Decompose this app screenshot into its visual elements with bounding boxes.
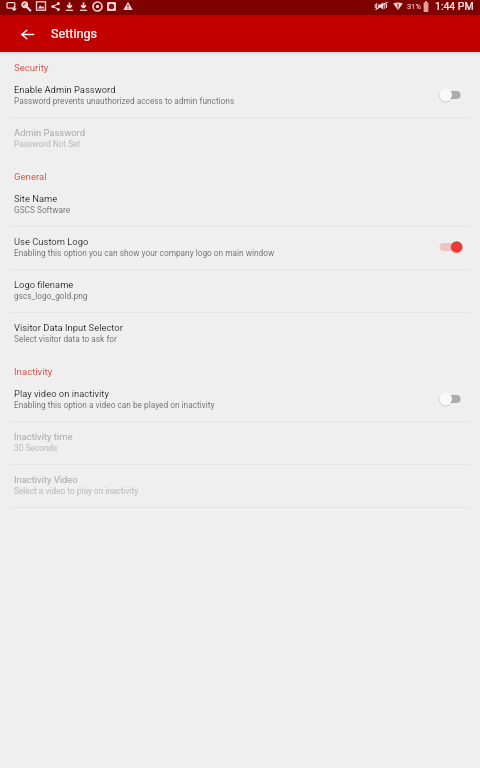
staticText: Visitor Data Input Selector [14,322,123,333]
staticText: Select visitor data to ask for [14,334,117,344]
button[interactable]: Logo filename [0,270,480,312]
staticText: gscs_logo_gold.png [14,291,88,301]
button[interactable]: Play video on inactivity [0,379,480,421]
staticText: Enabling this option you can show your c… [14,248,275,258]
staticText: Admin Password [14,127,85,138]
button[interactable]: Back [11,18,43,50]
staticText: Inactivity Video [14,474,78,485]
staticText: Password Not Set [14,139,81,149]
staticText: Settings [51,26,97,41]
button[interactable]: Admin Password [0,118,480,160]
button[interactable]: Use Custom Logo [0,227,480,269]
staticText: Logo filename [14,279,74,290]
button[interactable]: Site Name [0,184,480,226]
staticText: 1:44 PM [435,0,474,12]
staticText: Password prevents unauthorized access to… [14,96,235,106]
staticText: Inactivity time [14,431,73,442]
button[interactable]: Inactivity Video [0,465,480,507]
button[interactable]: Inactivity time [0,422,480,464]
staticText: Inactivity [14,366,53,377]
staticText: Enabling this option a video can be play… [14,400,215,410]
staticText: Security [14,62,49,73]
staticText: Enable Admin Password [14,84,116,95]
staticText: General [14,171,47,182]
staticText: Select a video to play on inactivity [14,486,139,496]
staticText: Use Custom Logo [14,236,89,247]
staticText: 31% [407,2,421,11]
staticText: 30 Seconds [14,443,58,453]
staticText: GSCS Software [14,205,71,215]
staticText: Site Name [14,193,58,204]
button[interactable]: Visitor Data Input Selector [0,313,480,355]
staticText: Play video on inactivity [14,388,109,399]
button[interactable]: Enable Admin Password [0,75,480,117]
